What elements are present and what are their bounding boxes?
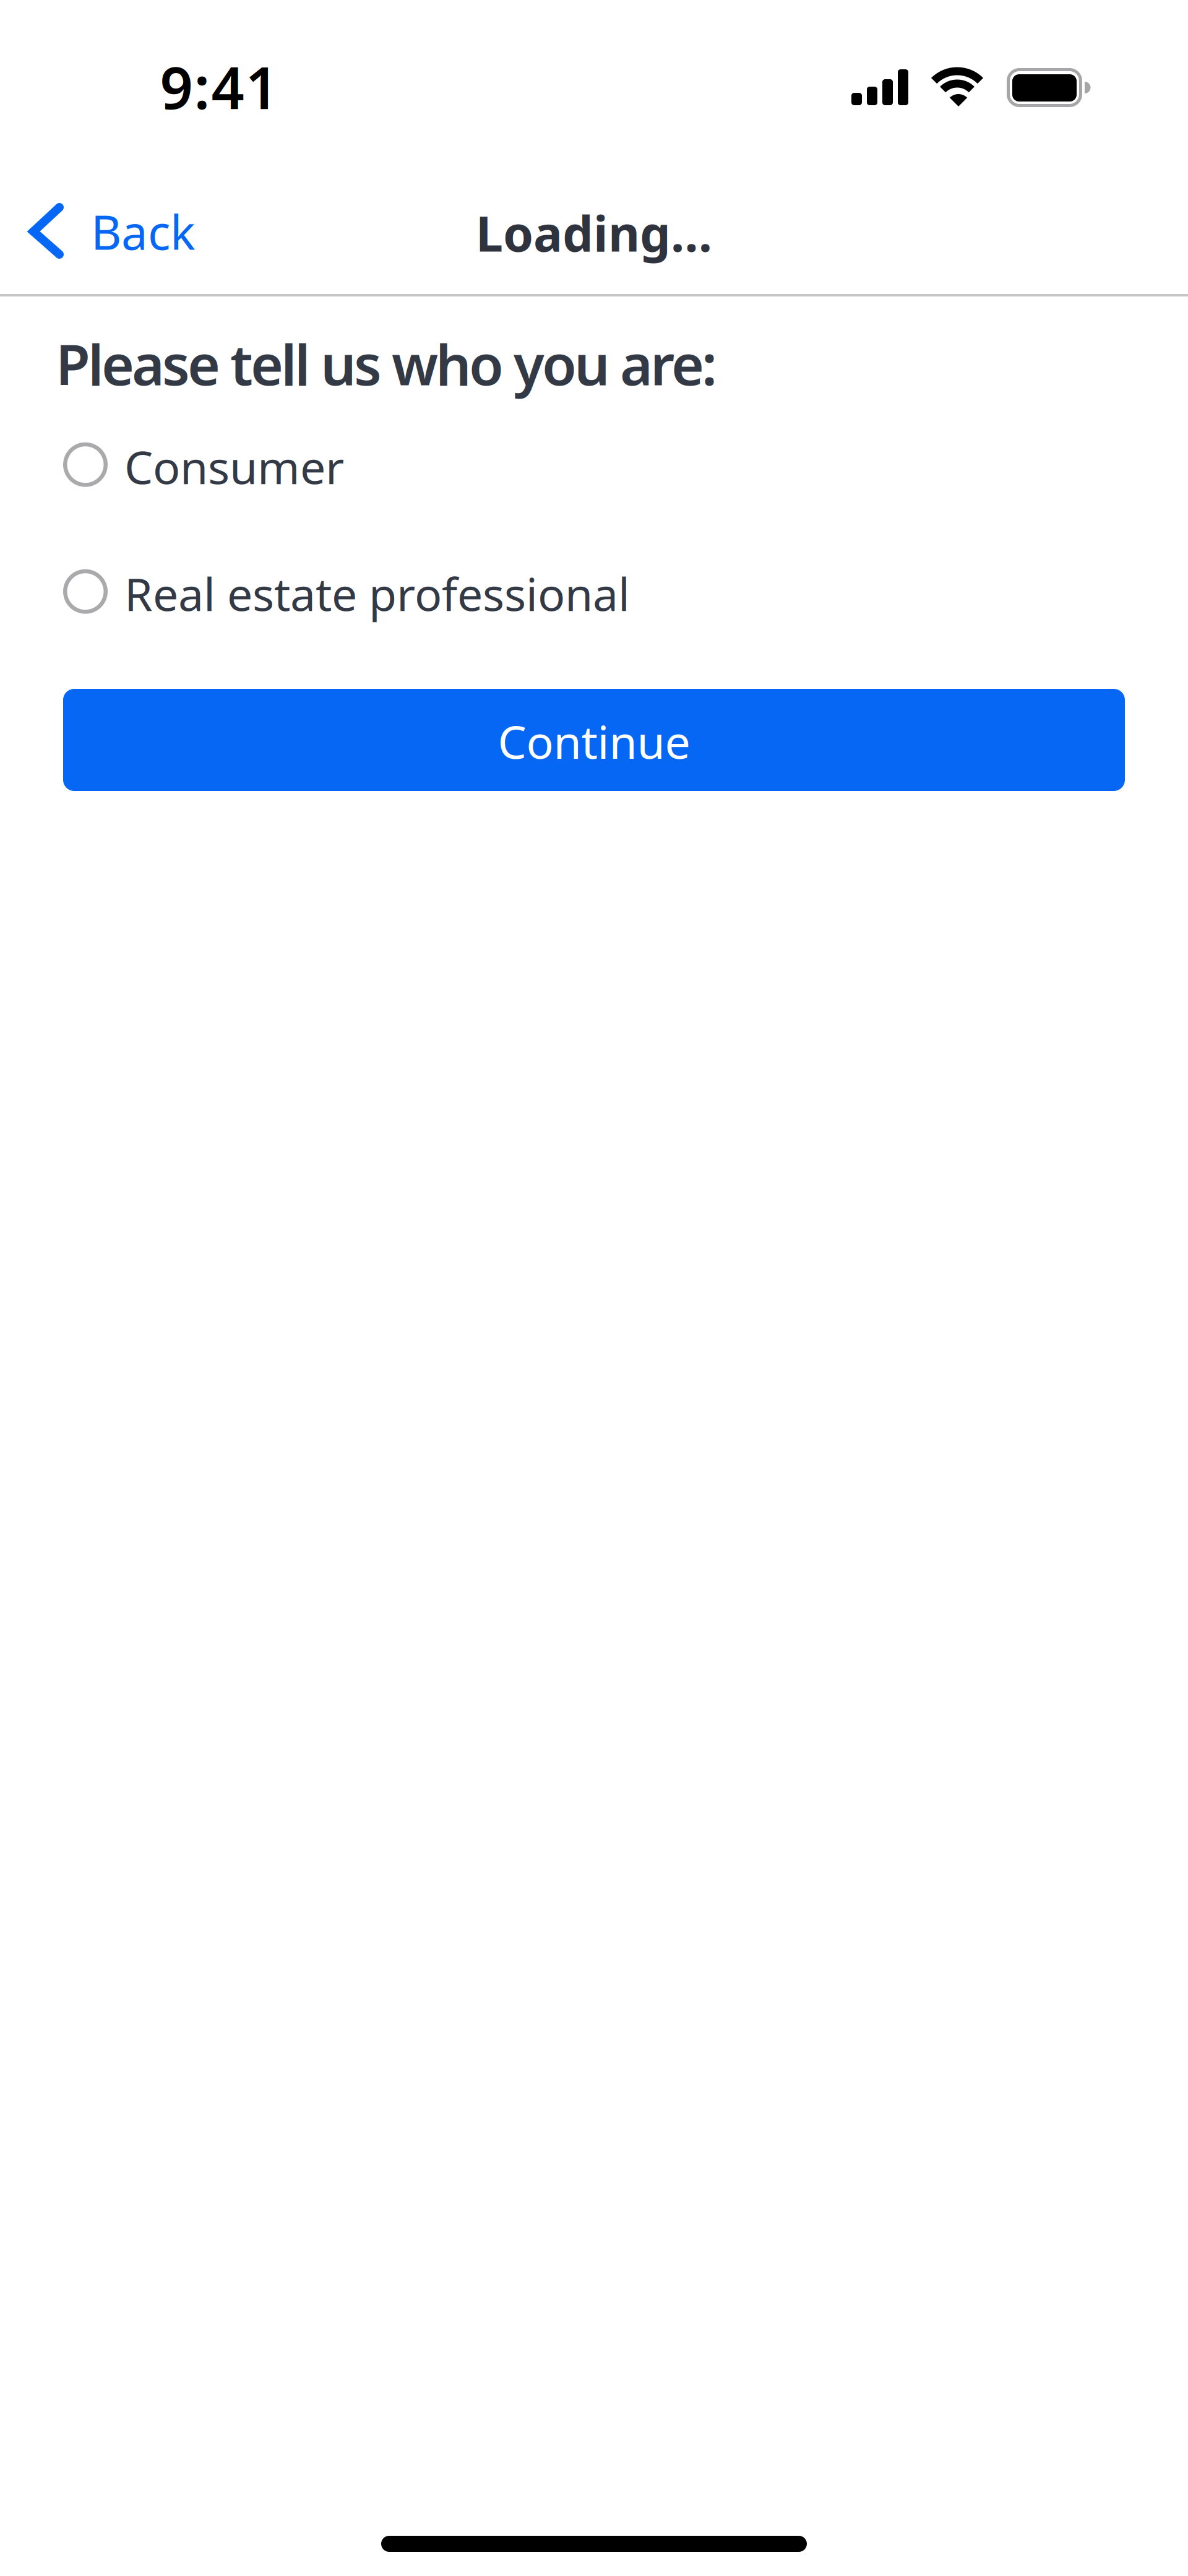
staticText: Real estate professional <box>124 563 630 624</box>
staticText: Consumer <box>124 436 344 497</box>
button[interactable]: Back <box>25 199 196 264</box>
staticText: Loading… <box>476 200 712 265</box>
button[interactable]: Consumer <box>63 436 344 497</box>
staticText: Continue <box>498 711 690 771</box>
staticText: 9:41 <box>160 48 278 125</box>
button[interactable]: Continue <box>63 689 1125 791</box>
staticText: Back <box>91 200 196 263</box>
button[interactable]: Real estate professional <box>63 563 630 624</box>
staticText: Please tell us who you are: <box>56 326 717 401</box>
